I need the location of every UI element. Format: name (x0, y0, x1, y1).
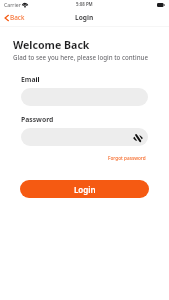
staticText: Glad to see you here, please login to co… (13, 53, 148, 61)
staticText: Login (75, 13, 94, 22)
staticText: Carrier (4, 1, 21, 8)
button[interactable]: Show password (130, 130, 145, 145)
staticText: Login (74, 184, 96, 195)
staticText: Email (21, 75, 40, 84)
button[interactable]: Show password (21, 128, 148, 146)
button[interactable]: Back (3, 13, 26, 22)
button[interactable]: Forgot password (108, 155, 146, 161)
button[interactable] (21, 88, 148, 106)
staticText: Back (10, 13, 25, 22)
staticText: 5:08 PM (76, 1, 93, 7)
button[interactable]: Login (20, 180, 149, 198)
staticText: Welcome Back (13, 38, 90, 52)
staticText: Password (21, 115, 54, 124)
